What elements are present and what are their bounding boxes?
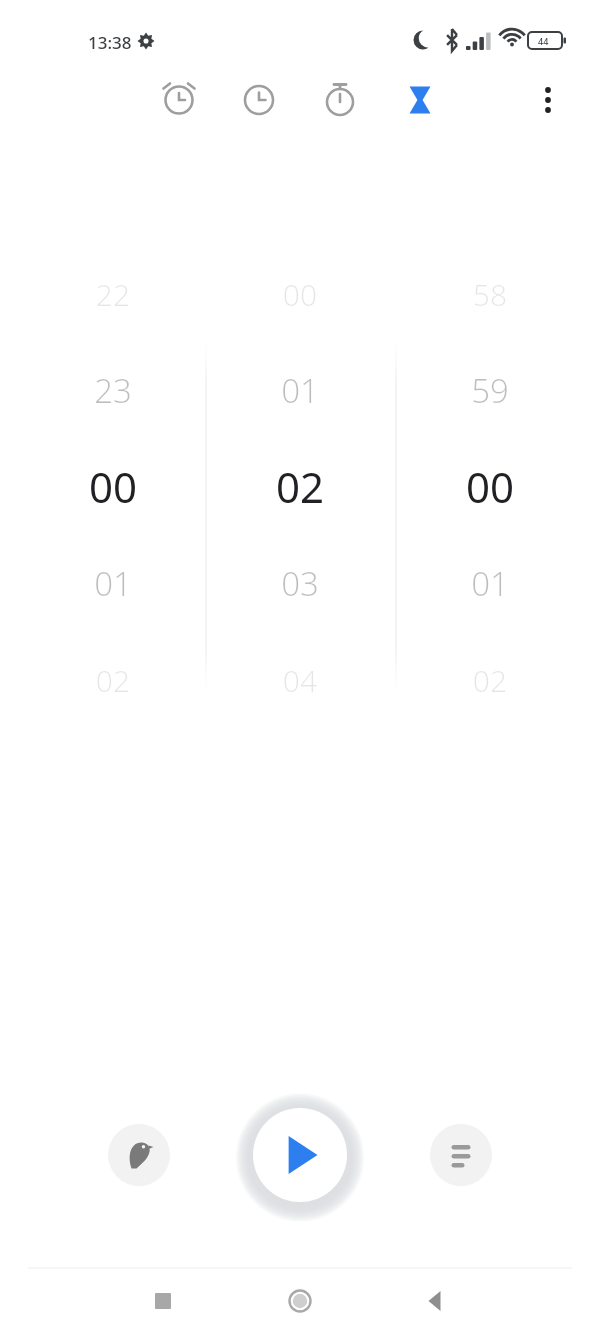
staticText: 23 [23,368,203,418]
button[interactable]: Time picker column [400,248,580,728]
staticText: 44 [538,35,549,47]
button[interactable]: Time picker column [210,248,390,728]
button[interactable]: Presets [430,1124,492,1186]
button[interactable]: Ringtone [108,1124,170,1186]
staticText: 00 [23,458,203,521]
button[interactable]: Home [274,1275,326,1327]
button[interactable]: Start timer [253,1108,347,1202]
staticText: 02 [210,458,390,521]
staticText: 03 [210,561,390,611]
staticText: 01 [400,561,580,611]
button[interactable]: Alarm [152,73,206,127]
button[interactable]: Recent apps [137,1275,189,1327]
button[interactable]: World clock [232,73,286,127]
staticText: 01 [23,561,203,611]
staticText: 13:38 [88,31,132,54]
button[interactable]: Timer [393,73,447,127]
button[interactable]: Back [409,1275,461,1327]
button[interactable]: Time picker column [23,248,203,728]
staticText: 01 [210,368,390,418]
staticText: 00 [400,458,580,521]
button[interactable]: Stopwatch [313,73,367,127]
staticText: 59 [400,368,580,418]
button[interactable]: More options [521,73,575,127]
